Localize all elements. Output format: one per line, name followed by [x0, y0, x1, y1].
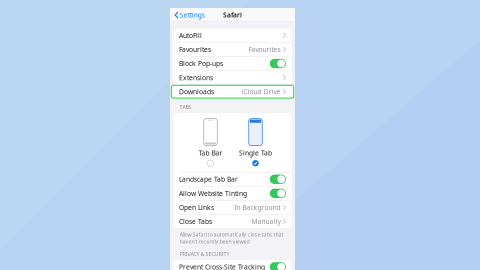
staticText: TABS: [179, 103, 191, 111]
button[interactable]: AutoFill: [173, 28, 291, 42]
button[interactable]: Prevent Cross-Site Tracking: [173, 260, 291, 270]
button[interactable]: Block Pop-ups: [173, 57, 291, 70]
staticText: PRIVACY & SECURITY: [179, 250, 229, 258]
staticText: Allow Safari to automatically close tabs…: [179, 231, 283, 245]
button[interactable]: Close Tabs: [173, 215, 291, 228]
staticText: Tab Bar: [198, 149, 222, 157]
button[interactable]: Extensions: [173, 71, 291, 84]
button[interactable]: Single Tab: [238, 119, 272, 166]
button[interactable]: Settings: [170, 9, 205, 21]
button[interactable]: Favourites: [173, 43, 291, 56]
staticText: Downloads: [179, 87, 214, 96]
staticText: Landscape Tab Bar: [179, 175, 238, 184]
button[interactable]: Downloads: [173, 85, 291, 98]
staticText: Single Tab: [239, 149, 272, 157]
staticText: Favourites: [248, 45, 280, 54]
staticText: Open Links: [179, 203, 214, 212]
button[interactable]: Allow Website Tinting: [173, 186, 291, 200]
staticText: Safari: [223, 11, 242, 19]
button[interactable]: Tab Bar: [193, 119, 227, 166]
button[interactable]: Landscape Tab Bar: [173, 172, 291, 186]
staticText: Block Pop-ups: [179, 59, 223, 68]
staticText: Prevent Cross-Site Tracking: [179, 262, 265, 270]
staticText: Manually: [251, 217, 280, 226]
staticText: Allow Website Tinting: [179, 189, 247, 198]
staticText: Extensions: [179, 73, 213, 82]
staticText: In Background: [234, 203, 280, 212]
staticText: AutoFill: [179, 31, 202, 40]
staticText: Favourites: [179, 45, 211, 54]
staticText: Settings: [180, 11, 205, 19]
button[interactable]: Open Links: [173, 201, 291, 214]
staticText: Close Tabs: [179, 217, 212, 226]
staticText: iCloud Drive: [241, 87, 280, 96]
